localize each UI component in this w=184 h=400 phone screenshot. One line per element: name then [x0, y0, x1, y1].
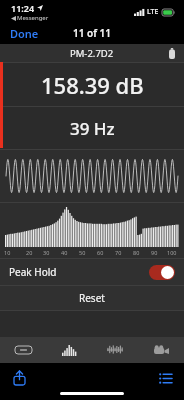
button[interactable]: Bars [46, 337, 92, 363]
staticText: 50 [79, 249, 86, 256]
staticText: Reset [79, 291, 105, 305]
button[interactable]: List [152, 365, 178, 391]
button[interactable]: Done [0, 23, 49, 44]
staticText: 80 [133, 249, 140, 256]
button[interactable]: Share [6, 365, 32, 391]
staticText: Messenger [17, 14, 49, 22]
staticText: LTE [147, 7, 159, 17]
staticText: 30 [43, 249, 50, 256]
staticText: 11:24 [11, 2, 35, 14]
button[interactable]: Spectrum [92, 337, 138, 363]
staticText: 10 [4, 249, 11, 256]
staticText: 20 [26, 249, 33, 256]
button[interactable]: Peak Hold [0, 259, 184, 285]
staticText: Done [10, 26, 39, 41]
staticText: 70 [115, 249, 122, 256]
staticText: PM-2.7D2 [70, 47, 114, 60]
staticText: Peak Hold [9, 265, 57, 279]
button[interactable]: Meter [0, 337, 46, 363]
staticText: 60 [97, 249, 104, 256]
staticText: 40 [61, 249, 68, 256]
staticText: 90 [151, 249, 158, 256]
button[interactable]: Reset [0, 286, 184, 310]
staticText: 11 of 11 [73, 26, 111, 40]
button[interactable]: Recorder [138, 337, 184, 363]
staticText: 158.39 dB [41, 70, 144, 100]
staticText: 39 Hz [70, 117, 115, 140]
staticText: 100 [167, 249, 177, 256]
